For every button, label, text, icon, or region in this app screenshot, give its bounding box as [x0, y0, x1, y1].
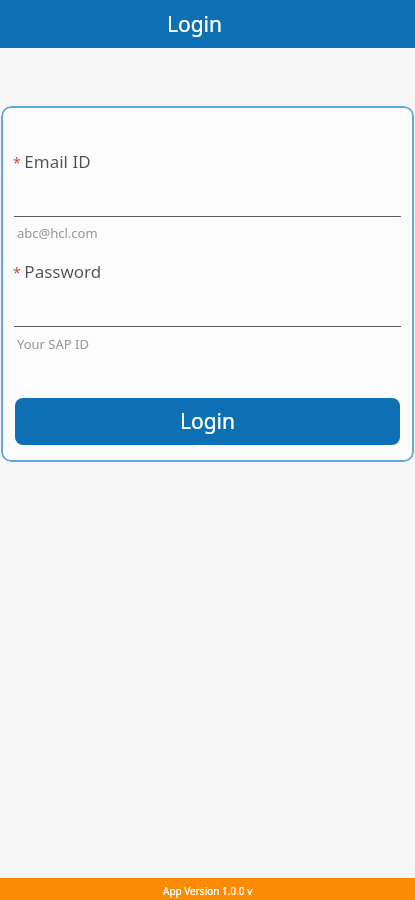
staticText: Login [180, 407, 236, 436]
staticText: Login [167, 10, 223, 39]
staticText: App Version 1.0.0 v [163, 884, 253, 898]
staticText: * Email ID [13, 150, 91, 173]
staticText: Your SAP ID [17, 335, 89, 353]
staticText: * Password [13, 260, 102, 283]
button[interactable]: Login [0, 0, 415, 48]
button[interactable]: App Version 1.0.0 v [0, 878, 415, 900]
button[interactable]: Login [15, 398, 400, 445]
staticText: abc@hcl.com [17, 224, 98, 242]
